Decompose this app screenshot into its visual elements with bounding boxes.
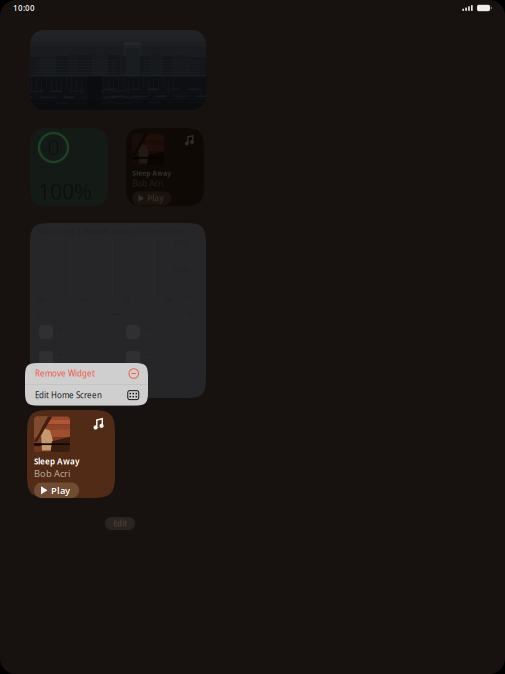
staticText: -- — [58, 360, 62, 367]
button[interactable]: Play — [132, 191, 171, 205]
staticText: Remove Widget — [35, 368, 95, 379]
staticText: Sleep Away — [34, 456, 80, 467]
staticText: Play — [147, 193, 163, 203]
staticText: Play — [51, 484, 70, 496]
staticText: -- — [145, 360, 149, 367]
staticText: Edit — [113, 518, 127, 529]
staticText: 100% — [38, 177, 92, 205]
button[interactable]: Remove Widget — [25, 363, 148, 384]
staticText: Bob Acri — [132, 178, 163, 189]
button[interactable]: Edit Home Screen — [25, 385, 148, 406]
staticText: Sleep Away — [132, 169, 171, 178]
staticText: Bob Acri — [34, 467, 70, 479]
button[interactable]: Play — [34, 482, 79, 498]
button[interactable]: Edit — [105, 517, 135, 530]
staticText: Edit Home Screen — [35, 390, 102, 400]
staticText: 10:00 — [13, 3, 35, 13]
